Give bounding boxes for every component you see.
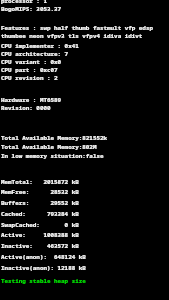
staticText: CPU implementer : 0x41 <box>1 42 79 50</box>
staticText: In low memory situation:false <box>1 152 104 160</box>
staticText: CPU variant : 0x0 <box>1 58 62 66</box>
staticText: Total Available Memory:821552k <box>1 134 108 142</box>
staticText: Cached: 793384 kB <box>1 210 79 218</box>
staticText: Total Available Memory:802M <box>1 143 97 151</box>
staticText: Buffers: 29552 kB <box>1 199 79 207</box>
staticText: Active: 1008388 kB <box>1 231 79 239</box>
staticText: MemFree: 28532 kB <box>1 188 79 196</box>
staticText: thumbee neon vfpv3 tls vfpv4 idiva idivt <box>1 32 143 40</box>
staticText: Testing stable heap size <box>1 277 86 285</box>
staticText: processor : 1 <box>1 0 47 5</box>
staticText: Revision: 0000 <box>1 104 51 112</box>
staticText: Hardware : MT6589 <box>1 96 62 104</box>
staticText: Active(anon): 648124 kB <box>1 253 86 261</box>
staticText: Features : swp half thumb fastmult vfp e… <box>1 24 153 32</box>
staticText: CPU revision : 2 <box>1 74 58 82</box>
staticText: MemTotal: 2015872 kB <box>1 178 79 186</box>
staticText: BogoMIPS: 3053.37 <box>1 5 62 13</box>
staticText: CPU architecture: 7 <box>1 50 69 58</box>
staticText: Inactive(anon): 12188 kB <box>1 264 86 272</box>
staticText: SwapCached: 0 kB <box>1 221 79 229</box>
staticText: Inactive: 463572 kB <box>1 242 79 250</box>
staticText: CPU part : 0xc07 <box>1 66 58 74</box>
